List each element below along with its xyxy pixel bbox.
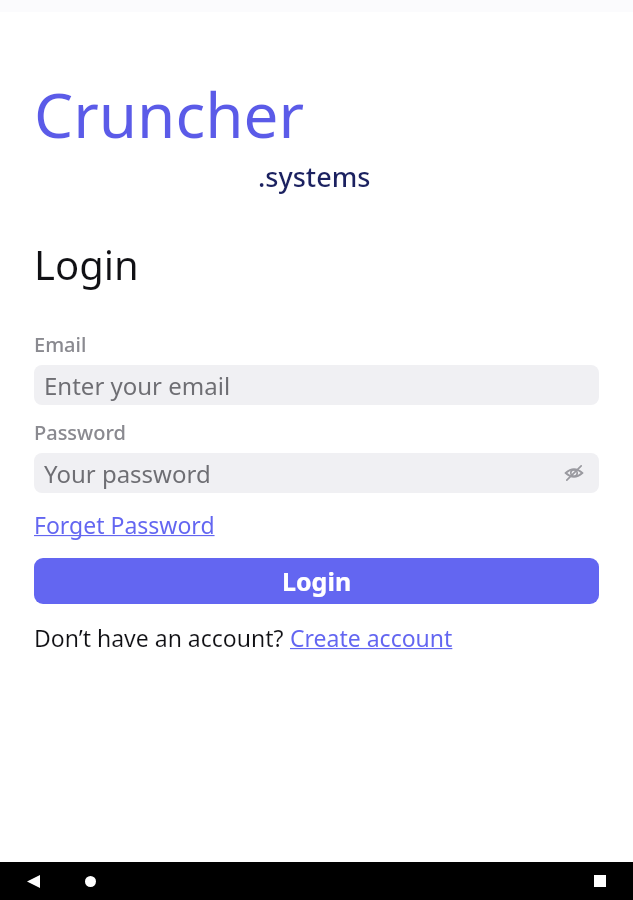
staticText: .systems [258, 158, 371, 195]
staticText: Create account [290, 622, 453, 653]
staticText: Don’t have an account? [34, 622, 290, 653]
staticText: Email [34, 331, 87, 358]
button[interactable]: Login [34, 558, 599, 604]
staticText: Your password [44, 457, 211, 490]
staticText: Forget Password [34, 509, 215, 540]
button[interactable]: Recent apps [587, 868, 613, 894]
staticText: Password [34, 419, 126, 446]
staticText: Login [34, 237, 139, 291]
staticText: Login [282, 564, 352, 598]
button[interactable]: Home [77, 868, 103, 894]
staticText: Cruncher [34, 72, 305, 156]
button[interactable]: Create account [290, 622, 453, 653]
button[interactable]: Back [20, 868, 46, 894]
staticText: Enter your email [44, 369, 231, 402]
button[interactable]: Enter your email [34, 365, 599, 405]
button[interactable]: Your password [34, 453, 599, 493]
other: Show password [563, 462, 585, 484]
button[interactable]: Forget Password [34, 509, 215, 540]
